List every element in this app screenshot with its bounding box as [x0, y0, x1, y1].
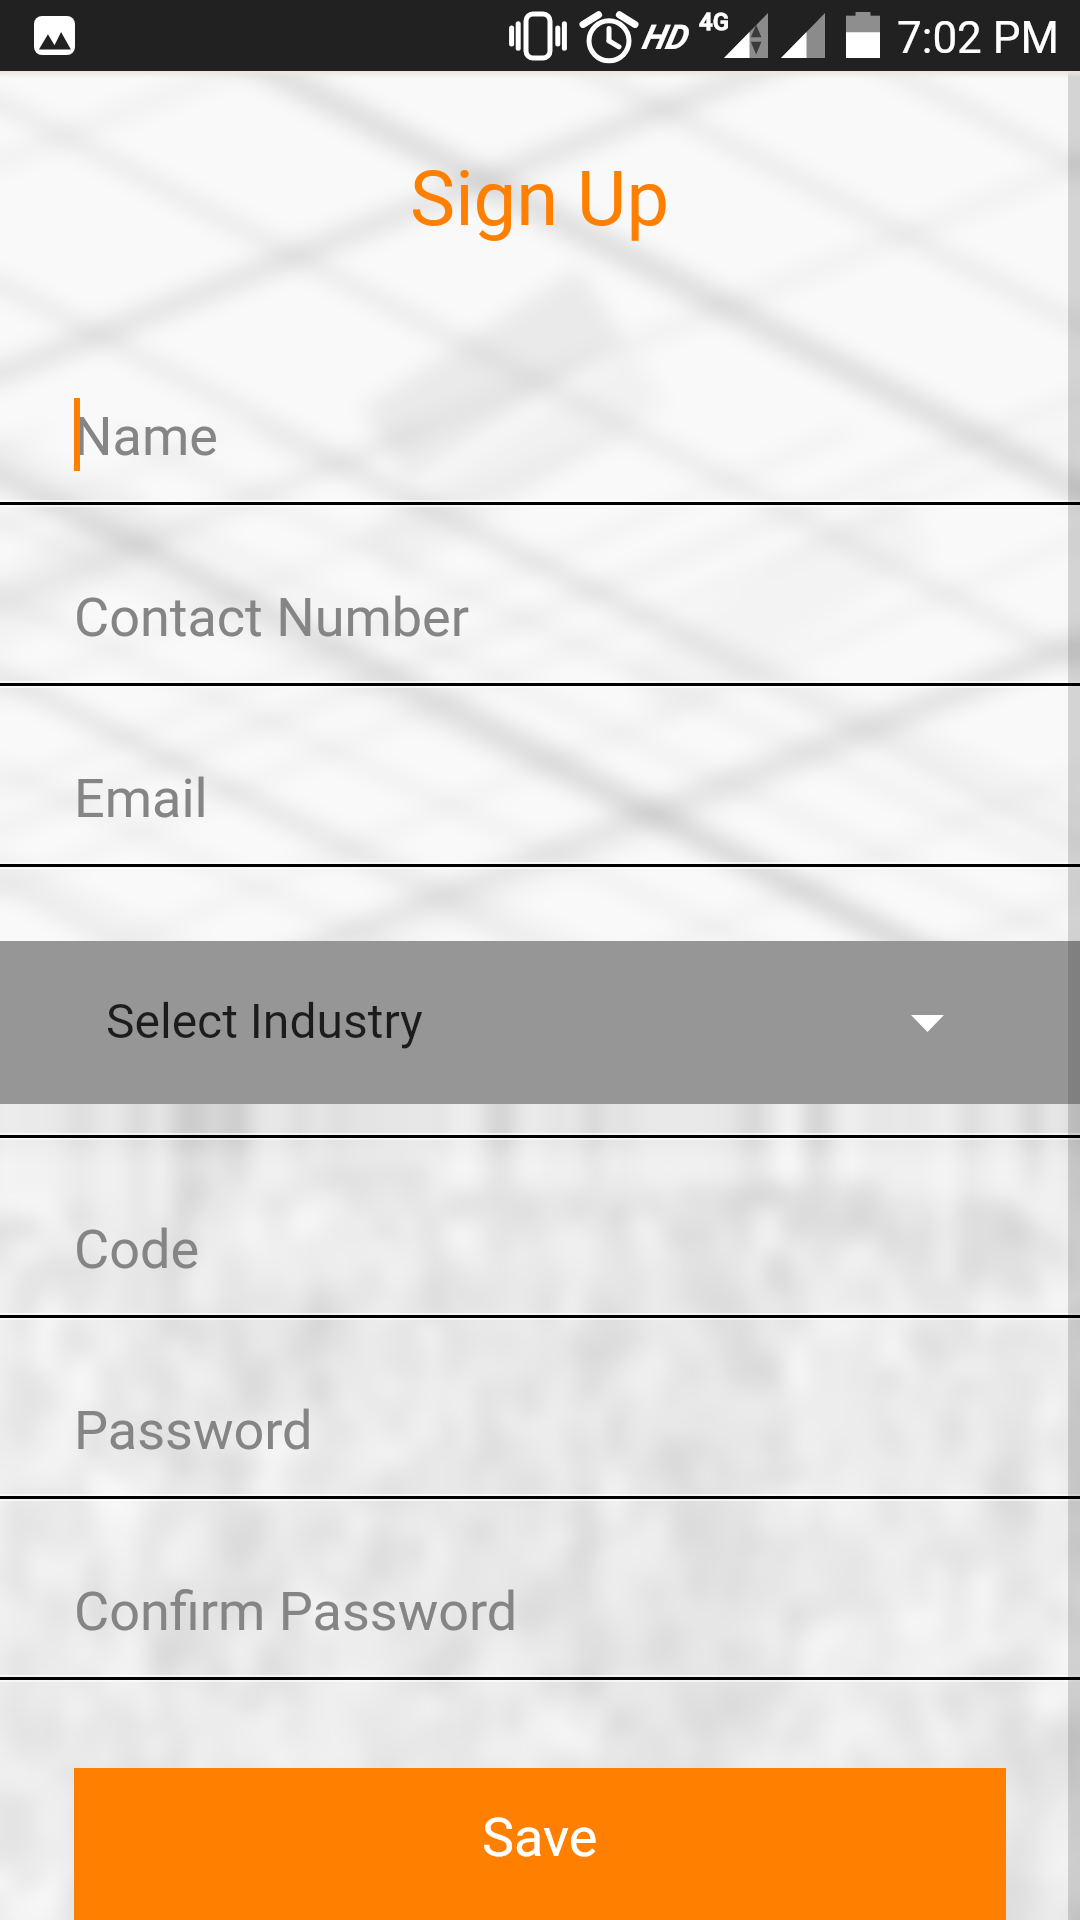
staticText: Email: [74, 767, 208, 830]
staticText: Confirm Password: [74, 1580, 518, 1643]
staticText: Contact Number: [74, 586, 470, 649]
staticText: Sign Up: [410, 154, 670, 243]
button[interactable]: Confirm Password: [0, 1499, 1080, 1677]
staticText: Password: [74, 1399, 313, 1462]
button[interactable]: Email: [0, 686, 1080, 864]
staticText: HD: [641, 17, 686, 57]
button[interactable]: Name: [0, 324, 1080, 502]
button[interactable]: Save: [74, 1768, 1006, 1920]
staticText: Save: [482, 1806, 598, 1869]
staticText: Code: [74, 1218, 200, 1281]
button[interactable]: Contact Number: [0, 505, 1080, 683]
staticText: 4G: [699, 8, 729, 36]
button[interactable]: Select Industry: [0, 941, 1080, 1104]
button[interactable]: Code: [0, 1137, 1080, 1315]
other: Gallery: [34, 16, 75, 55]
other: Open industry list: [911, 1015, 944, 1032]
staticText: 7:02 PM: [897, 12, 1059, 64]
staticText: Name: [74, 405, 218, 468]
button[interactable]: Password: [0, 1318, 1080, 1496]
staticText: Select Industry: [106, 993, 423, 1049]
